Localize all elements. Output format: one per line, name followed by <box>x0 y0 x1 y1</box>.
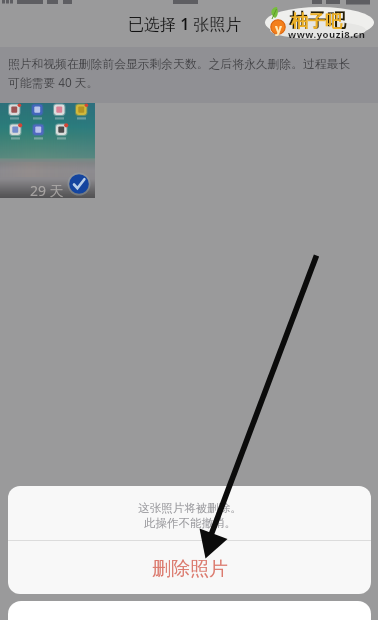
staticText: www.youzi8.cn <box>288 28 366 41</box>
staticText: 柚子吧 <box>291 11 342 32</box>
staticText: 照片和视频在删除前会显示剩余天数。之后将永久删除。过程最长 可能需要 40 天。 <box>8 57 351 90</box>
button[interactable]: Selected photo, 29 days remaining <box>0 103 95 198</box>
button[interactable]: 删除照片 <box>8 541 371 594</box>
staticText: 29 天 <box>30 181 64 200</box>
staticText: y <box>275 20 282 36</box>
button[interactable]: Cancel <box>8 601 371 620</box>
staticText: 已选择 1 张照片 <box>128 13 242 35</box>
staticText: 柚子吧 <box>289 9 346 33</box>
staticText: 删除照片 <box>152 557 228 581</box>
button[interactable]: 已选择 1 张照片 <box>0 0 378 45</box>
staticText: 这张照片将被删除。 此操作不能撤消。 <box>138 501 242 530</box>
